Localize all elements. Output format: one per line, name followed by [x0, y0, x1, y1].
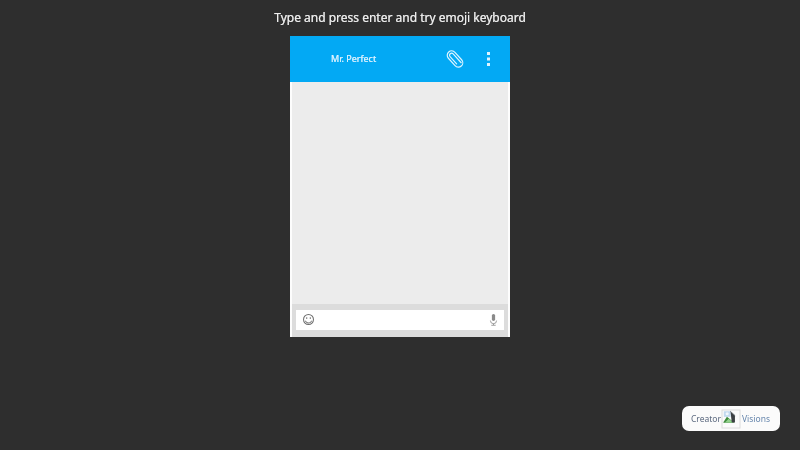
- button[interactable]: Voice input: [483, 310, 504, 330]
- button[interactable]: Creator: [682, 406, 780, 431]
- button[interactable]: More options: [475, 46, 501, 72]
- staticText: Creator: [691, 413, 721, 425]
- staticText: Visions: [742, 413, 771, 425]
- staticText: Type and press enter and try emoji keybo…: [0, 9, 800, 25]
- button[interactable]: Emoji keyboard: [296, 310, 317, 330]
- button[interactable]: Attach file: [441, 45, 469, 73]
- staticText: Mr. Perfect: [331, 52, 377, 64]
